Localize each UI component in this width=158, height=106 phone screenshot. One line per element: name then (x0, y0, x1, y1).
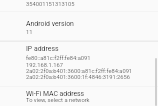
staticText: Android version (26, 20, 74, 28)
button[interactable]: Wi-Fi MAC address (0, 87, 158, 106)
staticText: fe80::a81c:f2ff:fe84:a091 192.168.1.167 … (26, 55, 133, 80)
staticText: Wi-Fi MAC address (26, 90, 85, 98)
staticText: IP address (26, 45, 59, 53)
staticText: 11 (26, 29, 33, 36)
button[interactable]: Android version (0, 12, 158, 41)
button[interactable]: IP address (0, 42, 158, 86)
button[interactable]: 354001151313105 (0, 0, 158, 11)
staticText: 354001151313105 (26, 1, 75, 8)
staticText: To view, select a network (26, 97, 90, 104)
